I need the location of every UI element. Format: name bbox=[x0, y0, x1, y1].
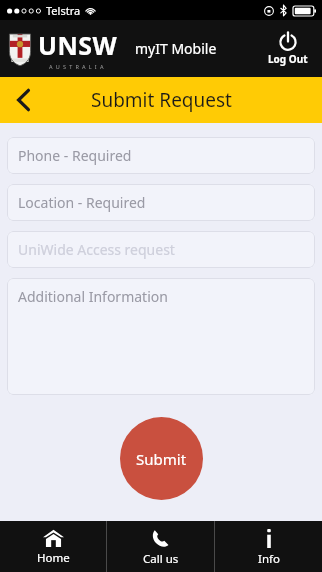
staticText: UNSW bbox=[38, 28, 118, 62]
staticText: Submit Request bbox=[91, 87, 232, 113]
staticText: Telstra bbox=[46, 3, 81, 18]
staticText: Home bbox=[37, 550, 70, 566]
staticText: Info bbox=[258, 551, 280, 567]
button[interactable]: Back bbox=[0, 77, 46, 123]
button[interactable]: Log Out bbox=[264, 29, 312, 68]
staticText: Log Out bbox=[268, 52, 308, 66]
button[interactable]: Additional Information bbox=[7, 278, 315, 395]
staticText: Location - Required bbox=[18, 193, 146, 212]
button[interactable]: Submit bbox=[120, 417, 203, 500]
button[interactable]: Location - Required bbox=[7, 184, 315, 221]
staticText: Phone - Required bbox=[18, 146, 132, 165]
staticText: Call us bbox=[143, 551, 179, 567]
button[interactable]: UniWide Access request bbox=[7, 231, 315, 268]
button[interactable]: Home bbox=[0, 521, 106, 572]
staticText: AUSTRALIA bbox=[49, 63, 107, 70]
staticText: myIT Mobile bbox=[135, 39, 217, 58]
button[interactable]: Phone - Required bbox=[7, 137, 315, 174]
button[interactable]: Info bbox=[215, 521, 322, 572]
staticText: UniWide Access request bbox=[18, 240, 175, 259]
button[interactable]: Call us bbox=[107, 521, 214, 572]
staticText: Additional Information bbox=[18, 287, 168, 306]
staticText: Submit bbox=[136, 449, 187, 469]
